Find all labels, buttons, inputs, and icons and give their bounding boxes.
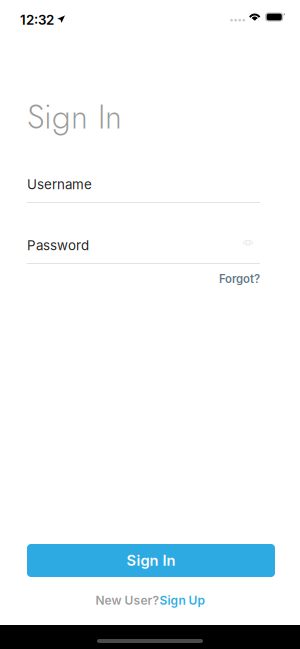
staticText: 12:32	[20, 12, 54, 28]
staticText: Username	[27, 176, 92, 192]
staticText: New User?	[95, 593, 159, 608]
button[interactable]: Sign In	[27, 544, 275, 577]
staticText: Sign In	[27, 93, 122, 141]
staticText: Password	[27, 237, 89, 253]
staticText: Forgot?	[219, 272, 260, 286]
staticText: Sign In	[126, 552, 175, 569]
button[interactable]: New User?	[95, 594, 204, 607]
staticText: Sign Up	[159, 593, 204, 608]
button[interactable]: Forgot?	[219, 272, 260, 286]
